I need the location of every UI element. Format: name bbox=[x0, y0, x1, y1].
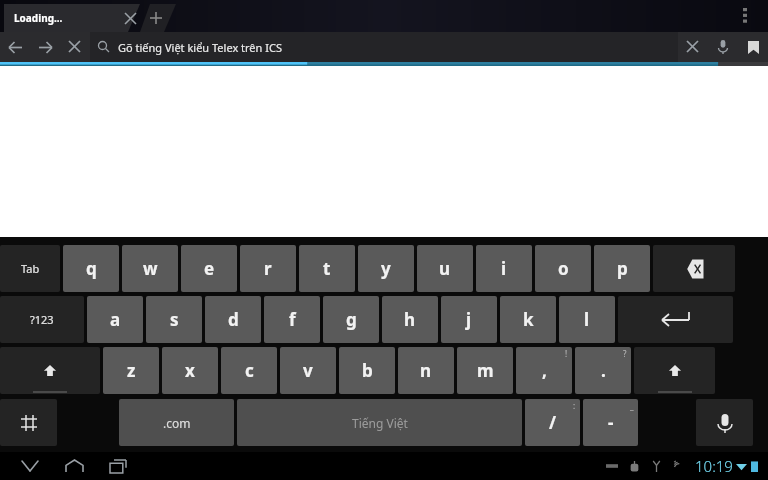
button[interactable]: y bbox=[358, 245, 414, 292]
staticText: / bbox=[549, 411, 557, 434]
button[interactable]: Enter bbox=[618, 296, 733, 343]
button[interactable]: q bbox=[63, 245, 119, 292]
button[interactable]: v bbox=[280, 347, 336, 394]
button[interactable]: Shift bbox=[0, 347, 100, 394]
staticText: e bbox=[204, 257, 215, 280]
button[interactable]: / bbox=[525, 399, 580, 446]
button[interactable]: Tab bbox=[0, 245, 60, 292]
staticText: g bbox=[346, 308, 357, 331]
staticText: p bbox=[617, 257, 628, 280]
staticText: n bbox=[420, 359, 432, 382]
button[interactable]: Close tab bbox=[118, 6, 142, 30]
button[interactable]: .com bbox=[119, 399, 234, 446]
staticText: y bbox=[381, 257, 391, 280]
button[interactable]: e bbox=[181, 245, 237, 292]
staticText: d bbox=[228, 308, 239, 331]
button[interactable]: b bbox=[339, 347, 395, 394]
staticText: v bbox=[303, 359, 313, 382]
button[interactable]: u bbox=[417, 245, 473, 292]
button[interactable]: z bbox=[103, 347, 159, 394]
button[interactable]: ?123 bbox=[0, 296, 84, 343]
button[interactable]: s bbox=[146, 296, 202, 343]
button[interactable]: a bbox=[87, 296, 143, 343]
staticText: _ bbox=[630, 400, 634, 411]
button[interactable]: . bbox=[575, 347, 631, 394]
button[interactable]: w bbox=[122, 245, 178, 292]
staticText: o bbox=[558, 257, 569, 280]
button[interactable]: c bbox=[221, 347, 277, 394]
button[interactable]: x bbox=[162, 347, 218, 394]
button[interactable]: , bbox=[516, 347, 572, 394]
staticText: x bbox=[185, 359, 195, 382]
button[interactable]: Voice input bbox=[696, 399, 753, 446]
button[interactable]: More options bbox=[730, 1, 760, 31]
staticText: s bbox=[170, 308, 179, 331]
button[interactable]: f bbox=[264, 296, 320, 343]
button[interactable]: h bbox=[382, 296, 438, 343]
staticText: - bbox=[608, 411, 614, 434]
staticText: i bbox=[501, 257, 507, 280]
staticText: q bbox=[86, 257, 97, 280]
button[interactable]: Tiếng Việt bbox=[237, 399, 522, 446]
staticText: r bbox=[264, 257, 272, 280]
button[interactable]: g bbox=[323, 296, 379, 343]
button[interactable]: t bbox=[299, 245, 355, 292]
button[interactable]: n bbox=[398, 347, 454, 394]
button[interactable]: l bbox=[559, 296, 615, 343]
staticText: a bbox=[110, 308, 121, 331]
button[interactable]: i bbox=[476, 245, 532, 292]
button[interactable]: Backspace bbox=[653, 245, 735, 292]
button[interactable]: Back bbox=[8, 452, 52, 480]
staticText: f bbox=[289, 308, 296, 331]
button[interactable]: k bbox=[500, 296, 556, 343]
staticText: w bbox=[143, 257, 158, 280]
staticText: Gõ tiếng Việt kiểu Telex trên ICS bbox=[118, 40, 282, 55]
staticText: Tiếng Việt bbox=[352, 415, 408, 431]
button[interactable]: p bbox=[594, 245, 650, 292]
button[interactable]: Forward bbox=[30, 32, 60, 62]
staticText: u bbox=[439, 257, 451, 280]
staticText: l bbox=[584, 308, 590, 331]
button[interactable]: Home bbox=[52, 452, 96, 480]
button[interactable]: Stop loading bbox=[60, 32, 90, 62]
button[interactable]: Gõ tiếng Việt kiểu Telex trên ICS bbox=[90, 32, 678, 62]
button[interactable]: New tab bbox=[140, 4, 176, 32]
staticText: Loading... bbox=[14, 11, 63, 25]
staticText: ! bbox=[565, 348, 568, 359]
button[interactable]: Recent apps bbox=[96, 452, 140, 480]
button[interactable]: Clear bbox=[678, 32, 708, 62]
staticText: .com bbox=[163, 415, 191, 431]
button[interactable]: o bbox=[535, 245, 591, 292]
staticText: ?123 bbox=[30, 312, 54, 327]
staticText: c bbox=[245, 359, 254, 382]
button[interactable]: - bbox=[583, 399, 638, 446]
staticText: h bbox=[404, 308, 416, 331]
staticText: : bbox=[573, 400, 576, 411]
button[interactable]: Voice search bbox=[708, 32, 738, 62]
staticText: . bbox=[601, 359, 606, 382]
staticText: b bbox=[362, 359, 373, 382]
button[interactable]: j bbox=[441, 296, 497, 343]
staticText: 10:19 bbox=[695, 456, 733, 476]
button[interactable]: Keyboard settings bbox=[0, 399, 57, 446]
staticText: m bbox=[477, 359, 494, 382]
button[interactable]: Shift bbox=[634, 347, 715, 394]
staticText: Tab bbox=[21, 261, 40, 276]
staticText: j bbox=[466, 308, 472, 331]
staticText: ? bbox=[623, 348, 627, 359]
button[interactable]: d bbox=[205, 296, 261, 343]
button[interactable]: Back bbox=[0, 32, 30, 62]
staticText: t bbox=[323, 257, 331, 280]
staticText: , bbox=[542, 359, 547, 382]
staticText: z bbox=[127, 359, 136, 382]
button[interactable]: r bbox=[240, 245, 296, 292]
staticText: k bbox=[523, 308, 534, 331]
button[interactable] bbox=[0, 4, 150, 32]
button[interactable]: Bookmark bbox=[738, 32, 768, 62]
button[interactable]: m bbox=[457, 347, 513, 394]
